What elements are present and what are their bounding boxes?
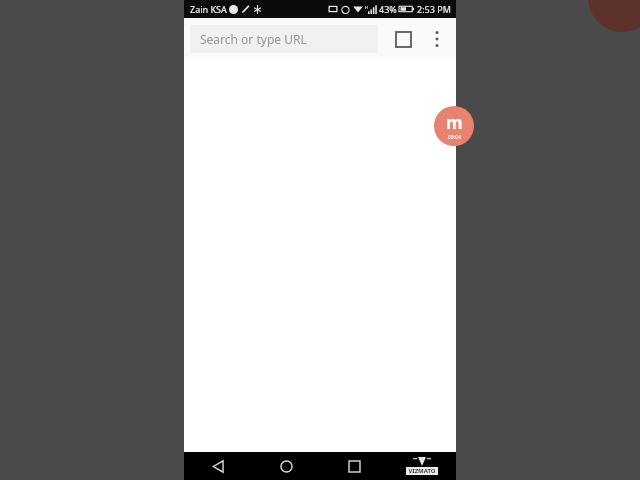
button[interactable]: Home (252, 452, 320, 480)
staticText: Search or type URL (200, 31, 307, 47)
staticText: m (446, 111, 463, 134)
button[interactable]: Tab switcher (386, 22, 420, 56)
staticText: 43% (379, 3, 397, 15)
staticText: 2:53 PM (417, 3, 451, 15)
button[interactable]: More options (422, 24, 452, 54)
button[interactable]: Recent apps (320, 452, 388, 480)
button[interactable]: Back (184, 452, 252, 480)
staticText: Zain KSA (190, 3, 227, 15)
button[interactable]: Search or type URL (190, 25, 378, 53)
staticText: VIZMATO (408, 467, 436, 475)
staticText: ᴴ (365, 5, 368, 13)
staticText: 00:04 (448, 134, 461, 141)
